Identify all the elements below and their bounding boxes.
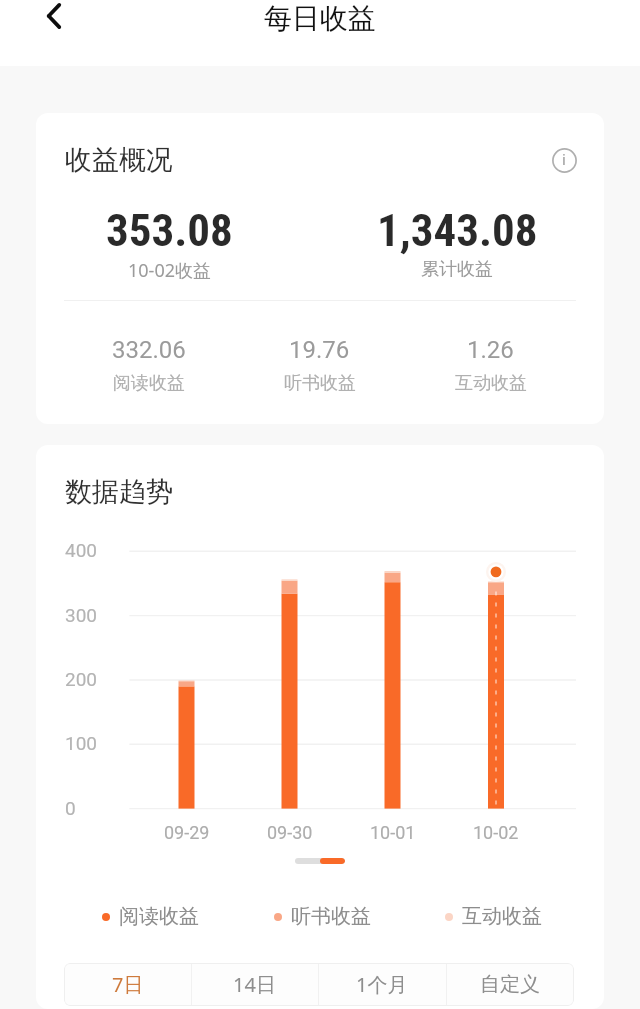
staticText: 1个月 [356,971,408,998]
staticText: 听书收益 [291,904,371,929]
staticText: 400 [65,539,98,561]
staticText: 14日 [233,971,276,998]
staticText: 19.76 [289,336,350,364]
staticText: 阅读收益 [119,904,199,929]
button[interactable]: 14日 [191,963,318,1006]
staticText: 自定义 [480,972,540,997]
staticText: i [562,149,566,169]
staticText: 1,343.08 [377,204,538,257]
button[interactable]: 阅读收益 [102,904,199,929]
staticText: 阅读收益 [113,372,185,395]
button[interactable]: Back [32,0,76,38]
staticText: 10-02 [473,822,519,843]
staticText: 353.08 [106,204,233,257]
staticText: 互动收益 [462,904,542,929]
staticText: 100 [65,732,98,754]
staticText: 200 [65,668,98,690]
staticText: 09-29 [164,822,210,843]
staticText: 数据趋势 [65,475,173,509]
staticText: 收益概况 [65,143,173,177]
button[interactable]: Info [550,146,578,174]
staticText: 10-01 [370,822,416,843]
button[interactable]: 7日 [64,963,191,1006]
staticText: 累计收益 [421,258,493,281]
staticText: 听书收益 [284,372,356,395]
button[interactable]: 听书收益 [274,904,371,929]
button[interactable]: 互动收益 [445,904,542,929]
button[interactable]: 自定义 [446,963,574,1006]
staticText: 332.06 [112,336,186,364]
staticText: 09-30 [267,822,313,843]
staticText: 7日 [112,971,144,998]
staticText: 1.26 [467,336,514,364]
staticText: 互动收益 [455,372,527,395]
staticText: 300 [65,604,98,626]
staticText: 10-02收益 [128,258,211,283]
staticText: 0 [65,797,76,819]
staticText: 每日收益 [264,1,376,36]
button[interactable]: 1个月 [318,963,446,1006]
